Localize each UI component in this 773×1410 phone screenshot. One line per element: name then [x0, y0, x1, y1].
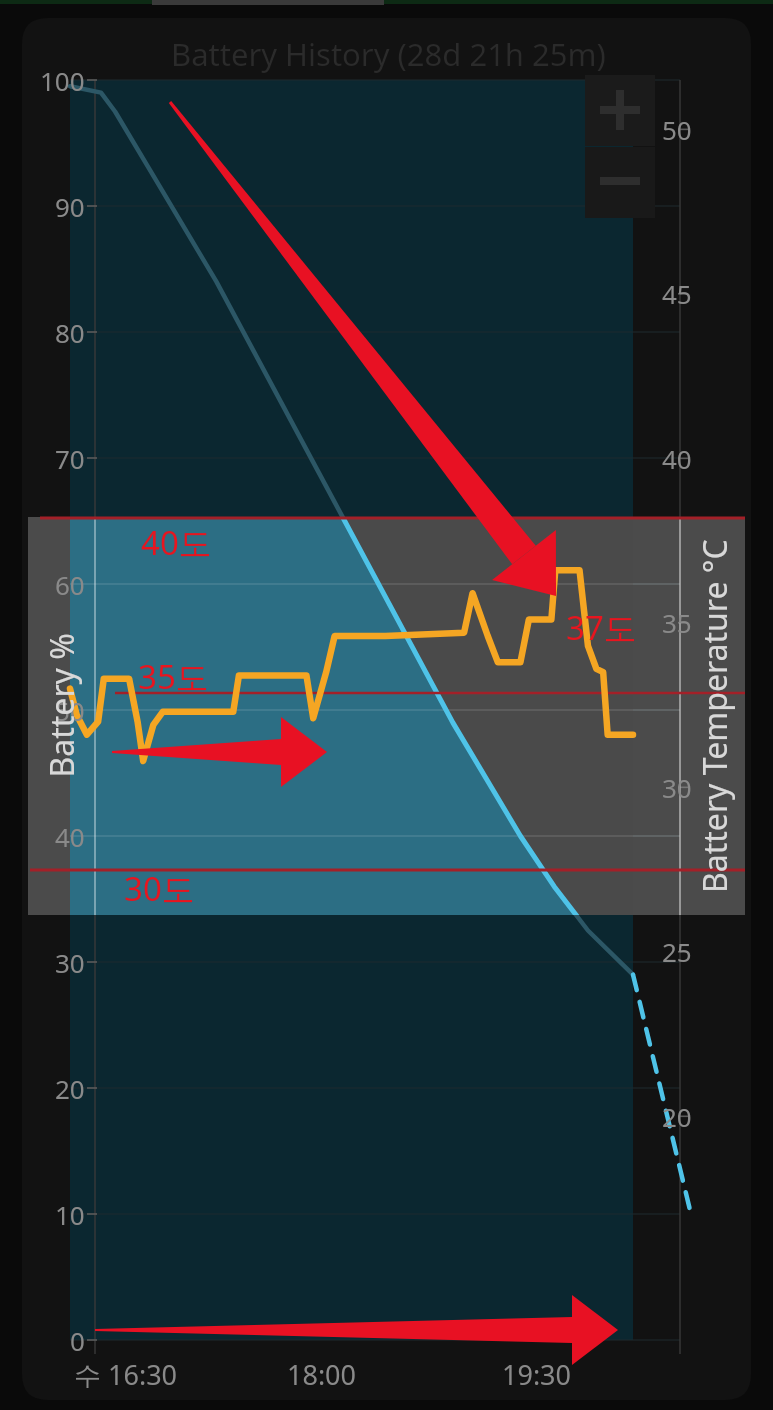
- button[interactable]: Battery history chart: [0, 0, 773, 1410]
